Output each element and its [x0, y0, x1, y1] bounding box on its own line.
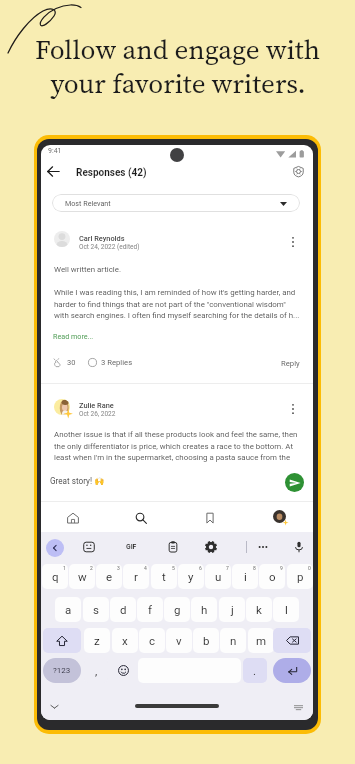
staticText: r	[134, 570, 138, 583]
button[interactable]: l	[273, 597, 299, 622]
staticText: b	[203, 634, 210, 647]
button[interactable]: j	[219, 597, 245, 622]
button[interactable]: Send	[285, 473, 304, 492]
staticText: GIF	[126, 543, 137, 551]
button[interactable]: Bookmarks	[193, 502, 227, 533]
button[interactable]: t	[151, 564, 177, 589]
staticText: Oct 24, 2022 (edited)	[79, 243, 140, 251]
button[interactable]: Most Relevant	[52, 194, 300, 212]
staticText: Responses (42)	[76, 167, 147, 179]
button[interactable]: Home	[56, 502, 90, 533]
staticText: 0	[308, 565, 311, 571]
button[interactable]: Keyboard settings	[200, 536, 222, 558]
staticText: w	[78, 570, 87, 583]
button[interactable]: Read more...	[52, 332, 95, 340]
staticText: x	[122, 634, 128, 647]
staticText: e	[106, 570, 113, 583]
button[interactable]: ?123	[43, 658, 81, 683]
button[interactable]: a	[55, 597, 81, 622]
button[interactable]: k	[246, 597, 272, 622]
button[interactable]: m	[248, 628, 274, 653]
button[interactable]: b	[193, 628, 219, 653]
button[interactable]: Settings	[290, 163, 307, 180]
button[interactable]: n	[220, 628, 246, 653]
staticText: v	[176, 634, 182, 647]
staticText: u	[215, 570, 222, 583]
button[interactable]: Backspace	[273, 628, 311, 653]
button[interactable]: e	[96, 564, 122, 589]
button[interactable]: h	[191, 597, 217, 622]
button[interactable]: f	[137, 597, 163, 622]
staticText: s	[93, 603, 99, 616]
staticText: m	[256, 634, 267, 647]
button[interactable]: Stickers	[78, 536, 100, 558]
staticText: 9	[280, 565, 283, 571]
staticText: k	[256, 603, 262, 616]
button[interactable]: s	[83, 597, 109, 622]
button[interactable]: r	[123, 564, 149, 589]
staticText: Zulie Rane	[79, 401, 114, 410]
staticText: Carl Reynolds	[79, 234, 125, 243]
button[interactable]: Reply	[280, 359, 301, 368]
button[interactable]: 3 Replies	[87, 355, 133, 370]
staticText: o	[269, 570, 276, 583]
button[interactable]: Hide keyboard	[48, 700, 61, 713]
button[interactable]: o	[259, 564, 285, 589]
button[interactable]: More options	[286, 402, 300, 416]
button[interactable]: GIF	[119, 536, 143, 558]
button[interactable]: q	[42, 564, 68, 589]
staticText: p	[297, 570, 304, 583]
button[interactable]: Back	[46, 539, 64, 557]
staticText: 3	[117, 565, 120, 571]
button[interactable]: ,	[84, 658, 108, 683]
button[interactable]: Shift	[43, 628, 81, 653]
button[interactable]: Profile	[263, 502, 297, 533]
staticText: 4	[144, 565, 147, 571]
staticText: a	[65, 603, 72, 616]
staticText: 6	[199, 565, 202, 571]
staticText: h	[201, 603, 208, 616]
staticText: g	[174, 603, 181, 616]
staticText: y	[188, 570, 194, 583]
staticText: .	[253, 664, 257, 677]
staticText: Follow and engage with	[35, 31, 320, 68]
button[interactable]: More options	[286, 235, 300, 249]
staticText: Most Relevant	[65, 199, 111, 207]
button[interactable]: x	[112, 628, 138, 653]
button[interactable]: Switch keyboard	[292, 701, 304, 713]
button[interactable]: v	[166, 628, 192, 653]
button[interactable]: Search	[124, 502, 158, 533]
staticText: ,	[95, 664, 98, 677]
staticText: 30	[67, 358, 76, 367]
button[interactable]: g	[164, 597, 190, 622]
staticText: 7	[226, 565, 229, 571]
staticText: Another issue is that if all these produ…	[54, 430, 300, 462]
staticText: 3 Replies	[101, 358, 133, 367]
button[interactable]: Voice input	[288, 536, 310, 558]
staticText: 5	[172, 565, 175, 571]
button[interactable]: c	[139, 628, 165, 653]
button[interactable]: w	[69, 564, 95, 589]
button[interactable]: .	[243, 658, 267, 683]
button[interactable]: Emoji	[111, 658, 135, 683]
button[interactable]: Enter	[273, 658, 311, 683]
button[interactable]: Back	[44, 162, 63, 181]
button[interactable]: p	[287, 564, 313, 589]
staticText: 8	[253, 565, 256, 571]
staticText: 1	[63, 565, 66, 571]
button[interactable]: Clipboard	[162, 536, 184, 558]
button[interactable]: i	[232, 564, 258, 589]
staticText: Great story! 🙌	[50, 476, 105, 486]
button[interactable]: 30	[52, 355, 76, 370]
staticText: 9:41	[48, 147, 62, 155]
button[interactable]: y	[178, 564, 204, 589]
button[interactable]: z	[84, 628, 110, 653]
button[interactable]: u	[205, 564, 231, 589]
staticText: While I was reading this, I am reminded …	[54, 288, 300, 320]
staticText: d	[120, 603, 127, 616]
staticText: i	[244, 570, 247, 583]
staticText: f	[148, 603, 152, 616]
button[interactable]: d	[110, 597, 136, 622]
button[interactable]: More	[252, 536, 274, 558]
